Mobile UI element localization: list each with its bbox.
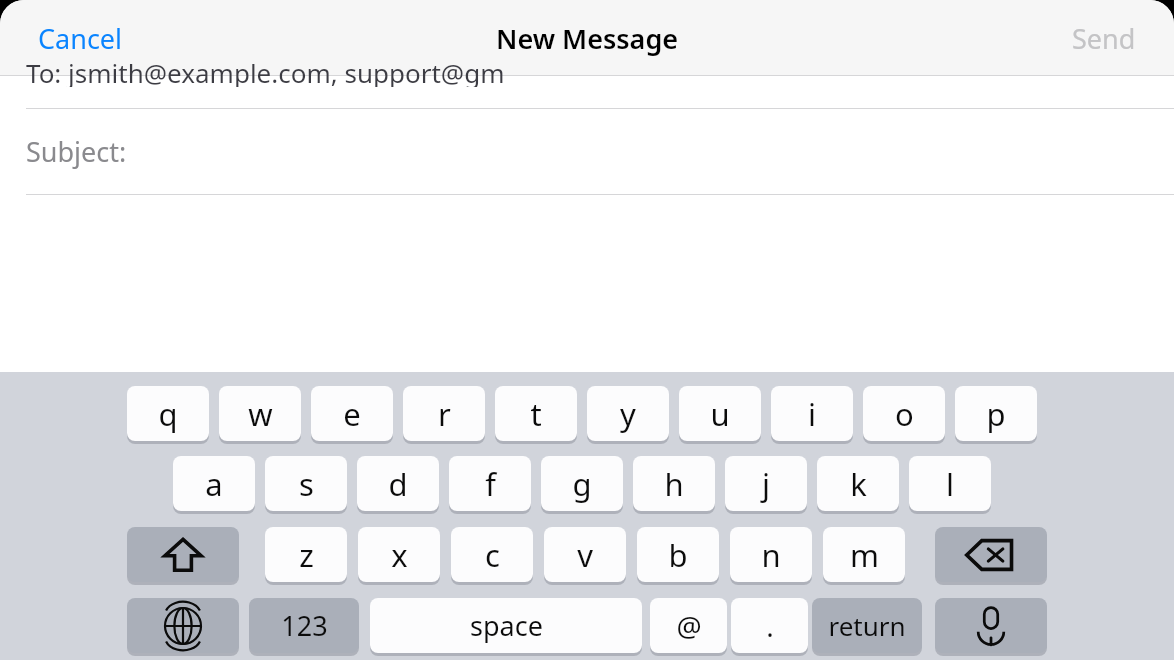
button[interactable]: Send: [1052, 8, 1156, 69]
staticText: z: [299, 534, 314, 576]
staticText: space: [470, 607, 543, 644]
staticText: k: [850, 463, 867, 505]
button[interactable]: h: [633, 456, 715, 511]
staticText: s: [299, 463, 314, 505]
button[interactable]: z: [265, 527, 347, 582]
button[interactable]: Shift: [127, 527, 239, 582]
button[interactable]: j: [725, 456, 807, 511]
staticText: Subject:: [26, 133, 127, 170]
button[interactable]: a: [173, 456, 255, 511]
button[interactable]: l: [909, 456, 991, 511]
staticText: q: [158, 393, 178, 435]
button[interactable]: To: jsmith@example.com, support@gm: [0, 76, 1174, 108]
staticText: Cancel: [38, 20, 123, 57]
button[interactable]: Next keyboard: [127, 598, 239, 653]
staticText: e: [343, 393, 361, 435]
button[interactable]: u: [679, 386, 761, 441]
button[interactable]: i: [771, 386, 853, 441]
button[interactable]: Dictate: [935, 598, 1047, 653]
staticText: .: [766, 607, 774, 645]
staticText: d: [388, 463, 408, 505]
button[interactable]: g: [541, 456, 623, 511]
button[interactable]: c: [451, 527, 533, 582]
staticText: h: [664, 463, 684, 505]
staticText: o: [895, 393, 914, 435]
button[interactable]: s: [265, 456, 347, 511]
button[interactable]: q: [127, 386, 209, 441]
staticText: m: [850, 534, 879, 576]
staticText: g: [572, 463, 592, 505]
button[interactable]: 123: [249, 598, 359, 653]
staticText: t: [530, 393, 542, 435]
staticText: n: [761, 534, 781, 576]
staticText: r: [438, 393, 451, 435]
button[interactable]: x: [358, 527, 440, 582]
button[interactable]: f: [449, 456, 531, 511]
button[interactable]: k: [817, 456, 899, 511]
staticText: a: [205, 463, 223, 505]
button[interactable]: m: [823, 527, 905, 582]
staticText: y: [620, 393, 636, 435]
staticText: c: [485, 534, 500, 576]
button[interactable]: .: [731, 598, 808, 653]
button[interactable]: w: [219, 386, 301, 441]
staticText: return: [828, 608, 906, 643]
button[interactable]: r: [403, 386, 485, 441]
staticText: i: [808, 393, 816, 435]
button[interactable]: return: [812, 598, 922, 653]
staticText: b: [668, 534, 688, 576]
staticText: To: jsmith@example.com, support@gm: [26, 55, 505, 87]
button[interactable]: v: [544, 527, 626, 582]
button[interactable]: Cancel: [18, 8, 143, 69]
staticText: New Message: [496, 20, 679, 57]
button[interactable]: y: [587, 386, 669, 441]
button[interactable]: Backspace: [935, 527, 1047, 582]
button[interactable]: p: [955, 386, 1037, 441]
staticText: 123: [281, 607, 328, 644]
button[interactable]: space: [370, 598, 642, 653]
staticText: w: [248, 393, 273, 435]
staticText: @: [676, 607, 702, 645]
button[interactable]: d: [357, 456, 439, 511]
button[interactable]: Subject:: [0, 109, 1174, 194]
staticText: v: [577, 534, 593, 576]
button[interactable]: @: [650, 598, 727, 653]
button[interactable]: o: [863, 386, 945, 441]
button[interactable]: b: [637, 527, 719, 582]
staticText: p: [986, 393, 1006, 435]
button[interactable]: t: [495, 386, 577, 441]
staticText: f: [485, 463, 496, 505]
button[interactable]: n: [730, 527, 812, 582]
staticText: u: [710, 393, 730, 435]
staticText: Send: [1072, 20, 1136, 57]
staticText: l: [946, 463, 954, 505]
button[interactable]: e: [311, 386, 393, 441]
staticText: j: [762, 463, 770, 505]
staticText: x: [391, 534, 408, 576]
